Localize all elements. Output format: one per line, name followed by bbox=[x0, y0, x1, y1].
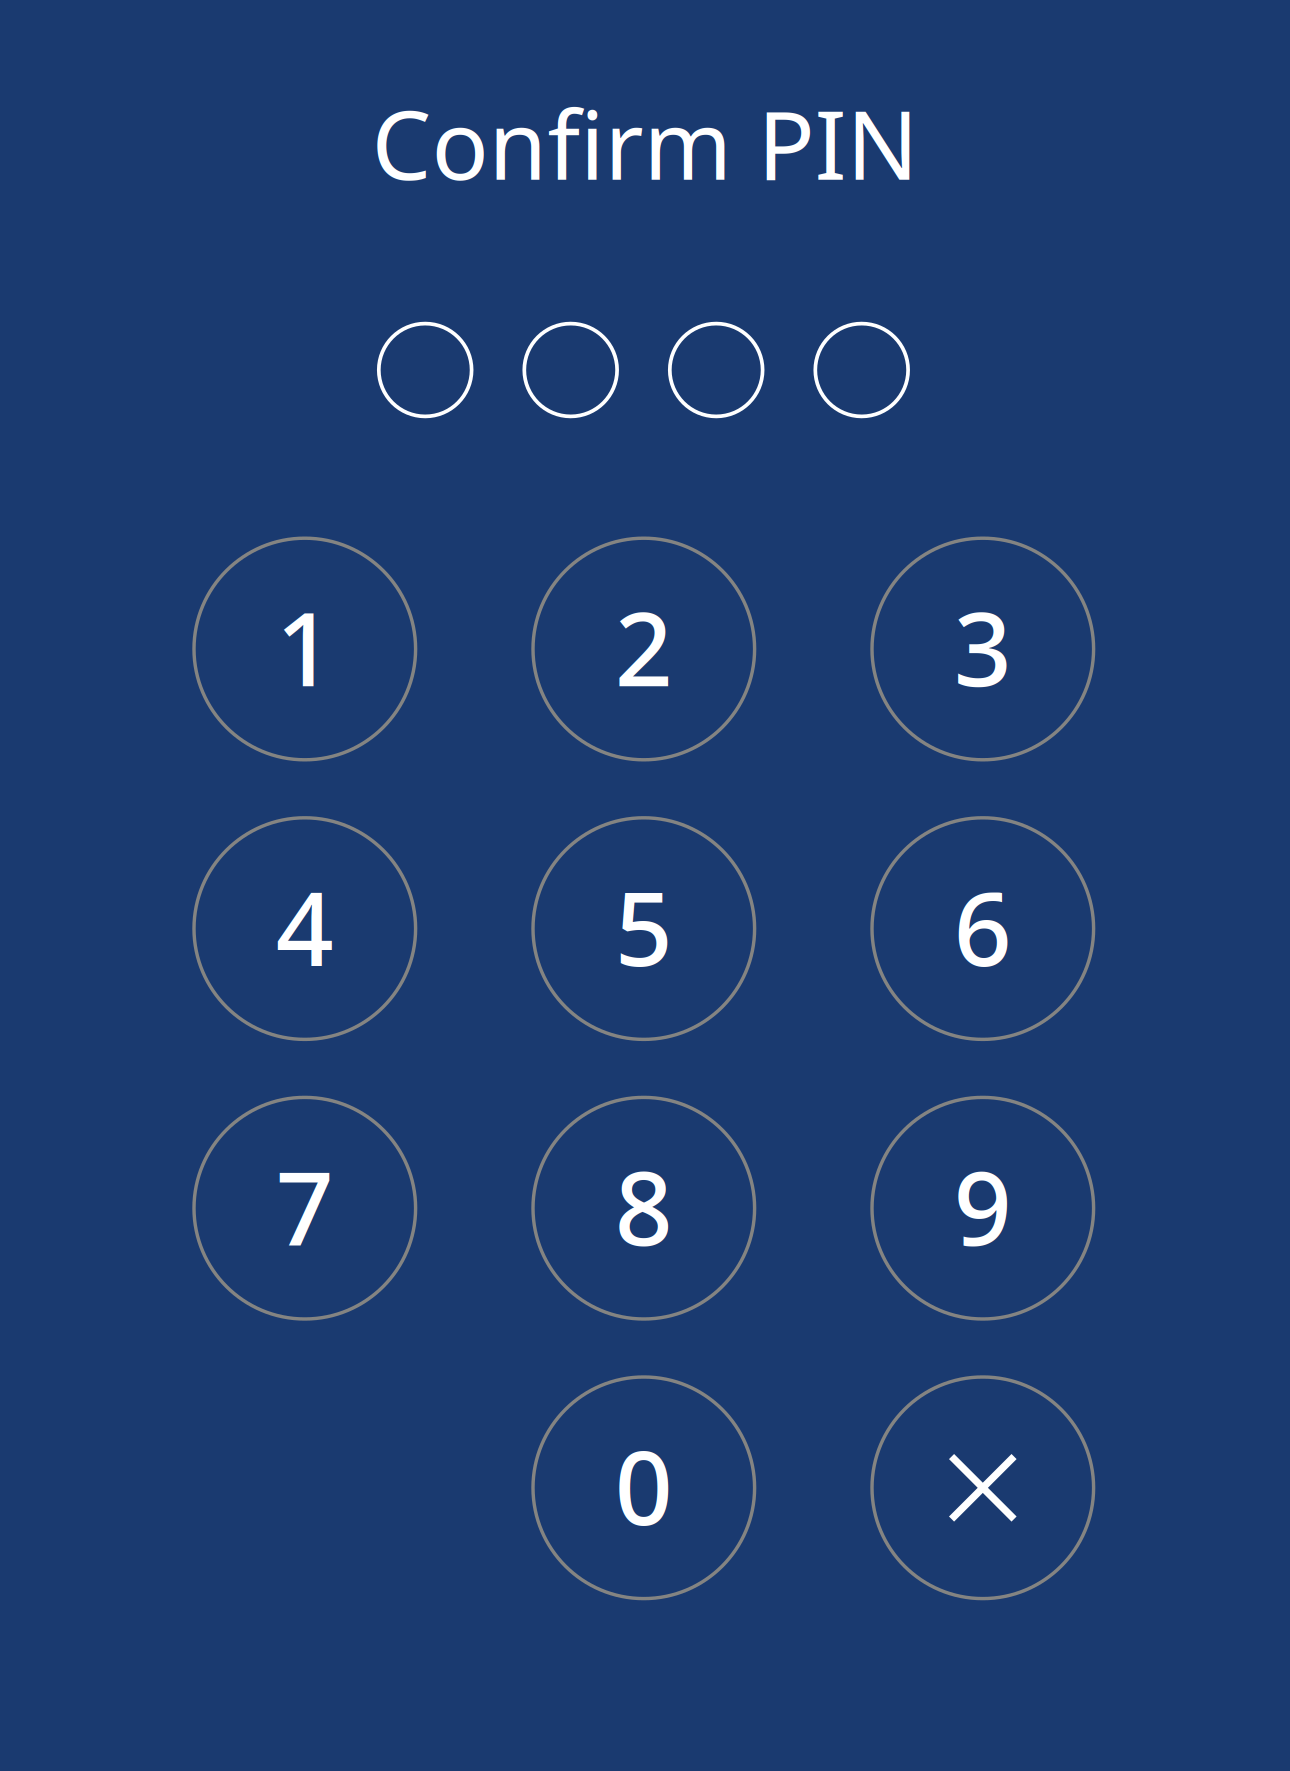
staticText: 6 bbox=[954, 859, 1012, 994]
button[interactable]: 4 bbox=[192, 816, 417, 1041]
button[interactable]: 1 bbox=[192, 536, 417, 761]
staticText: 0 bbox=[615, 1418, 673, 1553]
button[interactable]: Delete bbox=[870, 1375, 1095, 1600]
button[interactable]: 3 bbox=[870, 536, 1095, 761]
staticText: 4 bbox=[276, 859, 334, 994]
staticText: 8 bbox=[615, 1139, 673, 1273]
staticText: 2 bbox=[615, 580, 673, 714]
staticText: 5 bbox=[615, 859, 673, 994]
button[interactable]: 0 bbox=[531, 1375, 756, 1600]
button[interactable]: 8 bbox=[531, 1096, 756, 1321]
staticText: Confirm PIN bbox=[371, 80, 918, 206]
button[interactable]: 6 bbox=[870, 816, 1095, 1041]
staticText: 7 bbox=[276, 1139, 334, 1273]
button[interactable]: 2 bbox=[531, 536, 756, 761]
staticText: 9 bbox=[954, 1139, 1012, 1273]
staticText: 3 bbox=[954, 580, 1012, 714]
staticText: 1 bbox=[276, 580, 334, 714]
button[interactable]: 5 bbox=[531, 816, 756, 1041]
button[interactable]: 9 bbox=[870, 1096, 1095, 1321]
button[interactable]: 7 bbox=[192, 1096, 417, 1321]
